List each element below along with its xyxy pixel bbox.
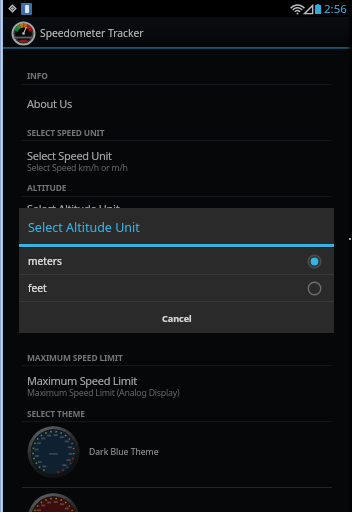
staticText: feet — [28, 281, 47, 295]
staticText: INFO — [27, 70, 48, 81]
button[interactable]: Select Altitude Unit — [0, 201, 352, 228]
staticText: Select Altitude meters or feet — [27, 215, 140, 227]
staticText: Select Altitude Unit — [27, 201, 120, 216]
staticText: SELECT SPEED UNIT — [27, 127, 105, 138]
staticText: Maximum Speed Limit (Analog Display) — [27, 387, 180, 399]
staticText: Select Speed Unit — [27, 148, 112, 163]
staticText: Cancel — [162, 312, 192, 324]
staticText: About Us — [27, 96, 72, 111]
other: feet — [307, 281, 322, 296]
staticText: meters — [28, 254, 62, 268]
staticText: ALTITUDE — [27, 182, 67, 193]
button[interactable]: Cancel — [19, 302, 334, 333]
button[interactable]: About Us — [0, 96, 352, 111]
button[interactable]: Select Speed Unit — [0, 148, 352, 175]
button[interactable]: Dark Blue Theme — [0, 425, 352, 479]
staticText: MAXIMUM SPEED LIMIT — [27, 352, 123, 363]
staticText: Dark Blue Theme — [89, 446, 159, 458]
staticText: Speedometer Tracker — [40, 26, 144, 40]
button[interactable]: Dark Red Theme — [0, 492, 352, 512]
staticText: SELECT THEME — [27, 408, 85, 419]
other: Selected meters — [307, 254, 322, 269]
staticText: Maximum Speed Limit — [27, 373, 137, 388]
button[interactable]: feet — [19, 275, 334, 301]
staticText: Select Altitude Unit — [28, 219, 140, 236]
staticText: 2:56 — [324, 1, 347, 17]
staticText: Select Speed km/h or m/h — [27, 162, 128, 174]
button[interactable]: meters — [19, 248, 334, 274]
button[interactable]: Maximum Speed Limit — [0, 373, 352, 400]
